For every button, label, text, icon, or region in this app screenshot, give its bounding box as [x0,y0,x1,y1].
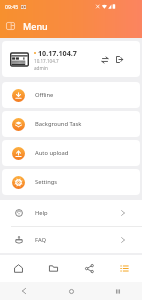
staticText: Settings [35,178,58,186]
staticText: 09:45 [5,3,19,10]
button[interactable]: Files [41,255,65,282]
button[interactable]: Recent apps [107,282,129,300]
button[interactable]: Share [77,255,101,282]
staticText: Background Task [35,120,82,128]
button[interactable]: Help [0,200,142,226]
button[interactable]: Home [60,282,82,300]
button[interactable]: Log out [113,53,126,66]
staticText: Auto upload [35,149,69,157]
staticText: 10.17.104.7 [38,48,77,58]
button[interactable]: Back [13,282,35,300]
button[interactable]: Home [6,255,30,282]
button[interactable]: Auto upload [2,140,140,166]
button[interactable]: Switch device [98,53,111,66]
button[interactable]: 10.17.104.7 [2,41,140,77]
staticText: Help [35,209,48,217]
staticText: Menu [23,20,48,32]
button[interactable]: Background Task [2,111,140,137]
staticText: Offline [35,91,54,99]
button[interactable]: More [112,255,136,282]
staticText: FAQ [35,236,47,244]
button[interactable]: Offline [2,82,140,108]
button[interactable]: Settings [2,169,140,195]
button[interactable]: Navigation menu [2,17,19,34]
staticText: admin [34,65,48,71]
staticText: 10.17.104.7 [34,58,59,64]
button[interactable]: FAQ [0,227,142,253]
